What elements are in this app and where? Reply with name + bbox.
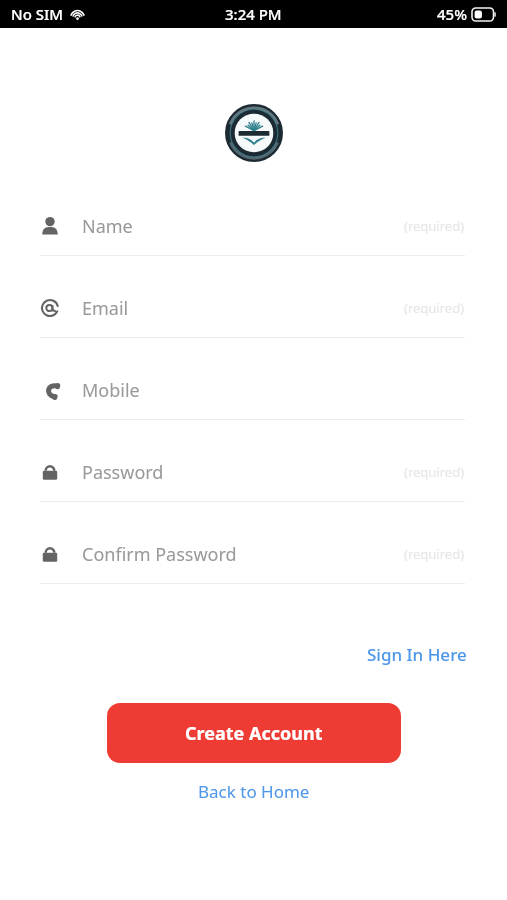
staticText: Create Account	[185, 721, 323, 746]
staticText: Name	[82, 214, 133, 239]
staticText: Mobile	[82, 378, 140, 403]
button[interactable]: Create Account	[107, 703, 401, 763]
staticText: Password	[82, 460, 164, 485]
button[interactable]: Mobile	[0, 361, 507, 443]
button[interactable]: Name	[0, 197, 507, 279]
button[interactable]: Back to Home	[174, 772, 334, 811]
staticText: No SIM	[11, 4, 64, 24]
button[interactable]: Email	[0, 279, 507, 361]
staticText: 3:24 PM	[225, 4, 282, 24]
staticText: Email	[82, 296, 129, 321]
staticText: Sign In Here	[367, 643, 467, 666]
staticText: (required)	[404, 217, 465, 235]
button[interactable]: Confirm Password	[0, 525, 507, 607]
button[interactable]: Password	[0, 443, 507, 525]
staticText: Confirm Password	[82, 542, 237, 567]
button[interactable]: Sign In Here	[327, 637, 507, 672]
staticText: (required)	[404, 299, 465, 317]
staticText: Back to Home	[198, 780, 310, 803]
staticText: (required)	[404, 545, 465, 563]
staticText: 45%	[437, 4, 467, 24]
staticText: (required)	[404, 463, 465, 481]
